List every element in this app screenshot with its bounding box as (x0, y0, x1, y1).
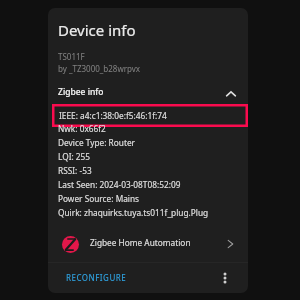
staticText: Device info (58, 20, 136, 40)
staticText: IEEE: a4:c1:38:0e:f5:46:1f:74 (59, 110, 167, 121)
staticText: Last Seen: 2024-03-08T08:52:09 (58, 179, 181, 193)
staticText: RECONFIGURE (66, 272, 127, 283)
staticText: Power Source: Mains (58, 193, 140, 207)
staticText: RSSI: -53 (58, 165, 92, 179)
staticText: Device Type: Router (58, 137, 135, 151)
button[interactable]: RECONFIGURE (60, 268, 133, 287)
staticText: TS011F (58, 51, 85, 62)
staticText: Nwk: 0x66f2 (58, 123, 106, 137)
staticText: Zigbee Home Automation (90, 237, 191, 248)
staticText: Quirk: zhaquirks.tuya.ts011f_plug.Plug (58, 207, 209, 221)
staticText: LQI: 255 (58, 151, 91, 165)
staticText: by _TZ3000_b28wrpvx (58, 63, 141, 74)
staticText: Zigbee info (58, 86, 104, 98)
button[interactable]: Zigbee Home Automation (48, 228, 248, 260)
button[interactable]: Zigbee info (48, 83, 248, 101)
button[interactable]: More options (214, 267, 236, 289)
